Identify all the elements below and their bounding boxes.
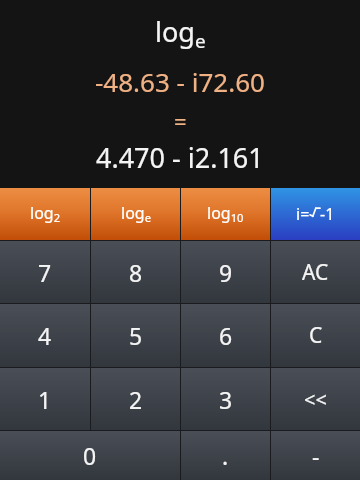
button[interactable]: 7 bbox=[0, 241, 90, 303]
button[interactable]: C bbox=[271, 304, 360, 367]
staticText: 8 bbox=[129, 257, 143, 288]
button[interactable]: Imaginary unit i equals square root of m… bbox=[271, 188, 360, 240]
staticText: loge bbox=[121, 202, 151, 226]
staticText: log10 bbox=[207, 202, 244, 226]
staticText: 1 bbox=[38, 384, 52, 415]
staticText: loge bbox=[155, 13, 206, 53]
staticText: 6 bbox=[219, 320, 233, 351]
staticText: 5 bbox=[129, 320, 143, 351]
staticText: log2 bbox=[30, 202, 61, 226]
staticText: = bbox=[174, 106, 187, 136]
staticText: 2 bbox=[129, 384, 143, 415]
button[interactable]: 2 bbox=[91, 368, 180, 430]
button[interactable]: log10 bbox=[181, 188, 270, 240]
staticText: 0 bbox=[83, 440, 97, 471]
button[interactable]: 3 bbox=[181, 368, 270, 430]
staticText: AC bbox=[302, 258, 329, 287]
staticText: C bbox=[309, 321, 323, 350]
button[interactable]: AC bbox=[271, 241, 360, 303]
button[interactable]: 5 bbox=[91, 304, 180, 367]
staticText: 7 bbox=[38, 257, 52, 288]
staticText: . bbox=[222, 440, 229, 471]
staticText: 9 bbox=[219, 257, 233, 288]
staticText: -1 bbox=[320, 203, 335, 225]
staticText: i= bbox=[296, 203, 310, 225]
staticText: 4 bbox=[38, 320, 52, 351]
button[interactable]: 1 bbox=[0, 368, 90, 430]
button[interactable]: 4 bbox=[0, 304, 90, 367]
staticText: -48.63 - i72.60 bbox=[95, 64, 265, 99]
button[interactable]: 6 bbox=[181, 304, 270, 367]
button[interactable]: . bbox=[181, 431, 270, 480]
button[interactable]: 9 bbox=[181, 241, 270, 303]
button[interactable]: 8 bbox=[91, 241, 180, 303]
staticText: 4.470 - i2.161 bbox=[96, 139, 264, 176]
button[interactable]: Backspace bbox=[271, 368, 360, 430]
button[interactable]: loge bbox=[91, 188, 180, 240]
button[interactable]: log2 bbox=[0, 188, 90, 240]
staticText: - bbox=[312, 440, 320, 471]
staticText: 3 bbox=[219, 384, 233, 415]
button[interactable]: 0 bbox=[0, 431, 180, 480]
button[interactable]: - bbox=[271, 431, 360, 480]
staticText: << bbox=[304, 386, 327, 413]
